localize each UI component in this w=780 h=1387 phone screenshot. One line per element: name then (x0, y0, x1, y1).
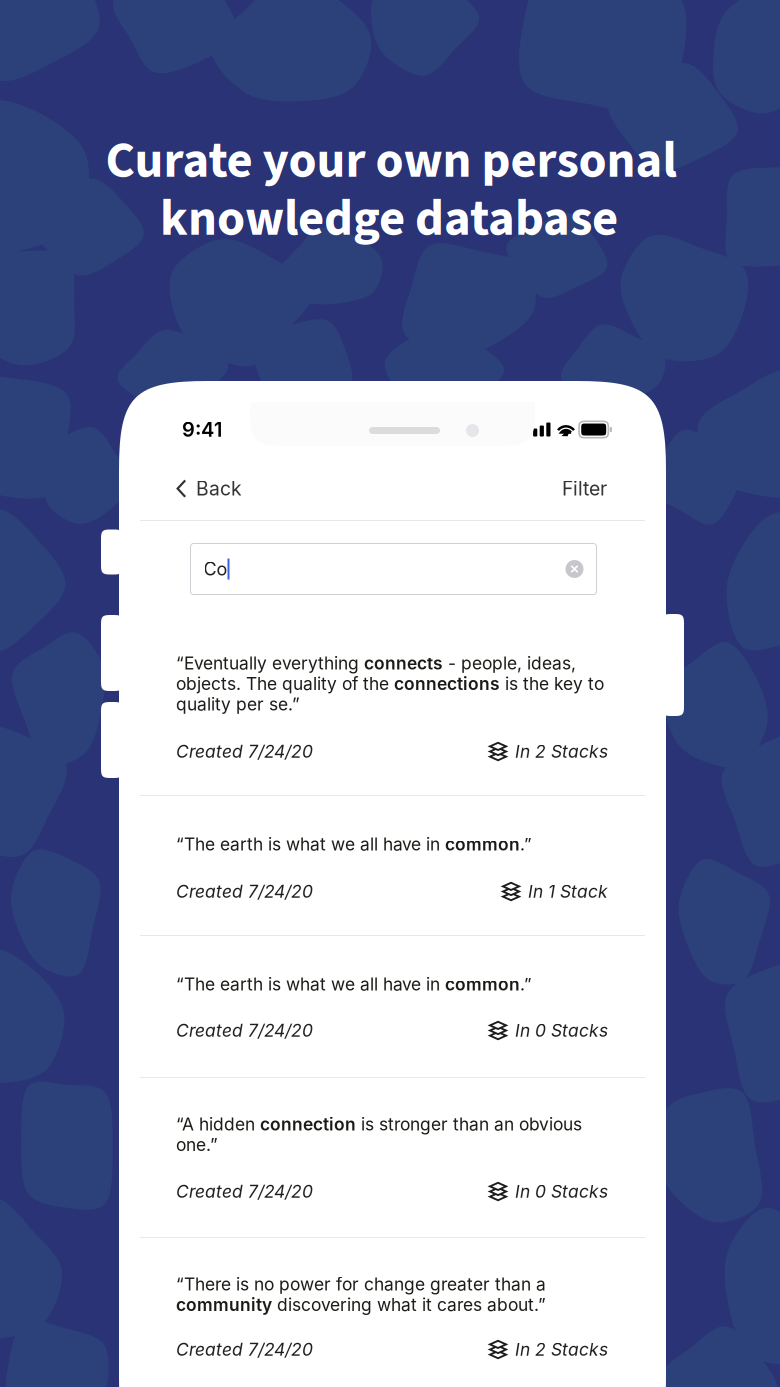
staticText: “There is no power for change greater th… (176, 1274, 546, 1315)
staticText (577, 425, 579, 434)
button[interactable]: Co (190, 543, 596, 594)
staticText: In 0 Stacks (515, 1181, 608, 1202)
button[interactable]: “The earth is what we all have in common… (140, 936, 645, 1077)
button[interactable]: “The earth is what we all have in common… (140, 796, 645, 935)
staticText: “A hidden connection is stronger than an… (176, 1114, 582, 1155)
button[interactable]: “Eventually everything connects - people… (140, 625, 645, 795)
staticText: “The earth is what we all have in common… (176, 834, 532, 854)
button[interactable]: “There is no power for change greater th… (140, 1238, 645, 1387)
button[interactable]: Filter (562, 467, 607, 510)
staticText: Created 7/24/20 (176, 881, 313, 902)
staticText: “Eventually everything connects - people… (176, 653, 604, 714)
staticText: Co (203, 558, 227, 580)
staticText: Curate your own personal (105, 125, 676, 197)
staticText: Back (196, 477, 242, 500)
staticText: In 0 Stacks (515, 1020, 608, 1041)
button[interactable]: Back (176, 467, 242, 510)
staticText: Created 7/24/20 (176, 741, 313, 762)
staticText: In 1 Stack (528, 881, 608, 902)
staticText: 9:41 (182, 417, 222, 442)
staticText: knowledge database (160, 183, 618, 255)
staticText: “The earth is what we all have in common… (176, 974, 532, 994)
staticText: Created 7/24/20 (176, 1181, 313, 1202)
staticText: Created 7/24/20 (176, 1020, 313, 1041)
button[interactable]: “A hidden connection is stronger than an… (140, 1078, 645, 1237)
staticText: In 2 Stacks (515, 1339, 608, 1360)
staticText: In 2 Stacks (515, 741, 608, 762)
staticText: Filter (562, 477, 607, 500)
staticText: Created 7/24/20 (176, 1339, 313, 1360)
